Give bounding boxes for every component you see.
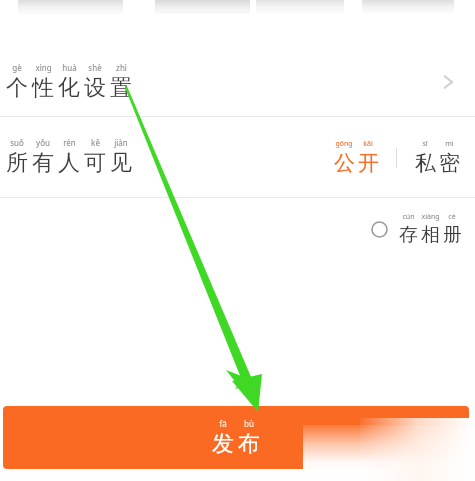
staticText: 布	[238, 430, 260, 458]
staticText: kě	[91, 137, 100, 148]
staticText: 可	[84, 149, 106, 177]
button[interactable]: fā	[3, 406, 469, 469]
button[interactable]: Save to album	[371, 212, 463, 247]
staticText: 化	[58, 74, 80, 102]
staticText: xìng	[35, 62, 52, 73]
staticText: 册	[443, 223, 462, 247]
staticText: kāi	[363, 139, 373, 149]
staticText: gōng	[335, 139, 353, 149]
staticText: fā	[219, 418, 227, 429]
staticText: yǒu	[36, 137, 50, 148]
staticText: 置	[110, 74, 132, 102]
staticText: rén	[63, 137, 76, 148]
staticText: 私	[415, 150, 436, 176]
button[interactable]: gè	[0, 47, 475, 116]
staticText: jiàn	[114, 137, 128, 148]
staticText: shè	[88, 62, 102, 73]
staticText: 性	[32, 74, 54, 102]
staticText: 相	[421, 223, 440, 247]
staticText: 公	[334, 150, 355, 176]
staticText: 存	[399, 223, 418, 247]
staticText: 见	[110, 149, 132, 177]
staticText: xiàng	[421, 212, 440, 222]
staticText: bù	[244, 418, 254, 429]
button[interactable]: sī	[411, 139, 463, 176]
staticText: gè	[12, 62, 22, 73]
staticText: cún	[402, 212, 415, 222]
staticText: zhì	[116, 62, 127, 73]
staticText: cè	[448, 212, 456, 222]
button[interactable]: gōng	[330, 139, 382, 176]
staticText: sī	[422, 139, 428, 149]
staticText: 密	[439, 150, 460, 176]
staticText: mì	[445, 139, 454, 149]
staticText: 个	[6, 74, 28, 102]
staticText: 开	[358, 150, 379, 176]
staticText: huà	[62, 62, 77, 73]
staticText: 有	[32, 149, 54, 177]
staticText: 发	[212, 430, 234, 458]
staticText: suǒ	[10, 137, 24, 148]
staticText: 所	[6, 149, 28, 177]
staticText: 人	[58, 149, 80, 177]
other: Save to album	[371, 221, 388, 238]
staticText: 设	[84, 74, 106, 102]
